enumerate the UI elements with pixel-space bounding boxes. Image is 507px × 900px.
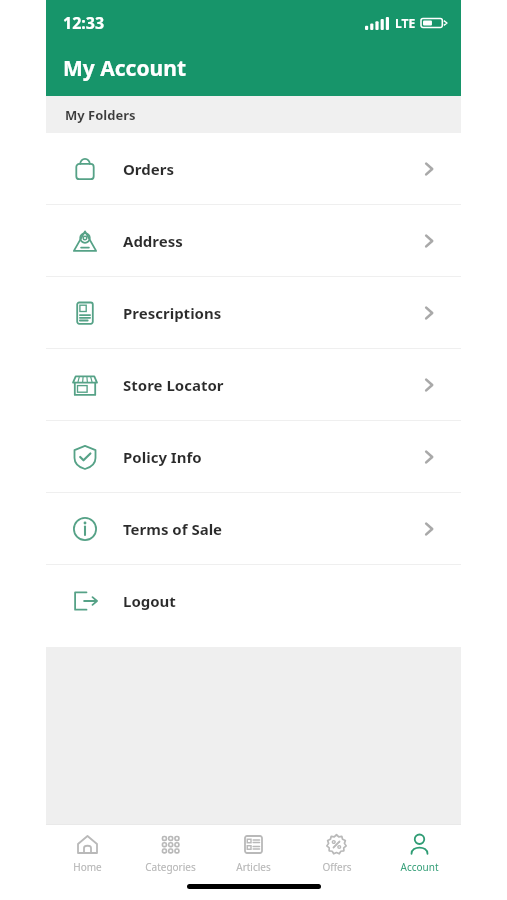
staticText: Logout <box>123 591 176 611</box>
button[interactable]: Offers <box>295 825 378 881</box>
button[interactable]: Address <box>46 205 461 276</box>
button[interactable]: Categories <box>129 825 212 881</box>
staticText: Categories <box>145 860 196 874</box>
staticText: Policy Info <box>123 447 202 467</box>
staticText: Prescriptions <box>123 303 222 323</box>
button[interactable]: Home <box>46 825 129 881</box>
staticText: Address <box>123 231 183 251</box>
button[interactable]: Prescriptions <box>46 277 461 348</box>
button[interactable]: Logout <box>46 565 461 636</box>
staticText: Orders <box>123 159 174 179</box>
staticText: Terms of Sale <box>123 519 223 539</box>
staticText: Store Locator <box>123 375 224 395</box>
button[interactable]: Account <box>378 825 461 881</box>
staticText: My Folders <box>65 106 136 124</box>
button[interactable]: Terms of Sale <box>46 493 461 564</box>
button[interactable]: Articles <box>212 825 295 881</box>
staticText: LTE <box>395 15 416 31</box>
button[interactable]: Store Locator <box>46 349 461 420</box>
staticText: Account <box>400 860 439 874</box>
staticText: My Account <box>63 54 186 83</box>
button[interactable]: Policy Info <box>46 421 461 492</box>
staticText: 12:33 <box>63 12 105 34</box>
staticText: Home <box>73 860 102 874</box>
staticText: Offers <box>322 860 352 874</box>
staticText: Articles <box>236 860 271 874</box>
button[interactable]: Orders <box>46 133 461 204</box>
